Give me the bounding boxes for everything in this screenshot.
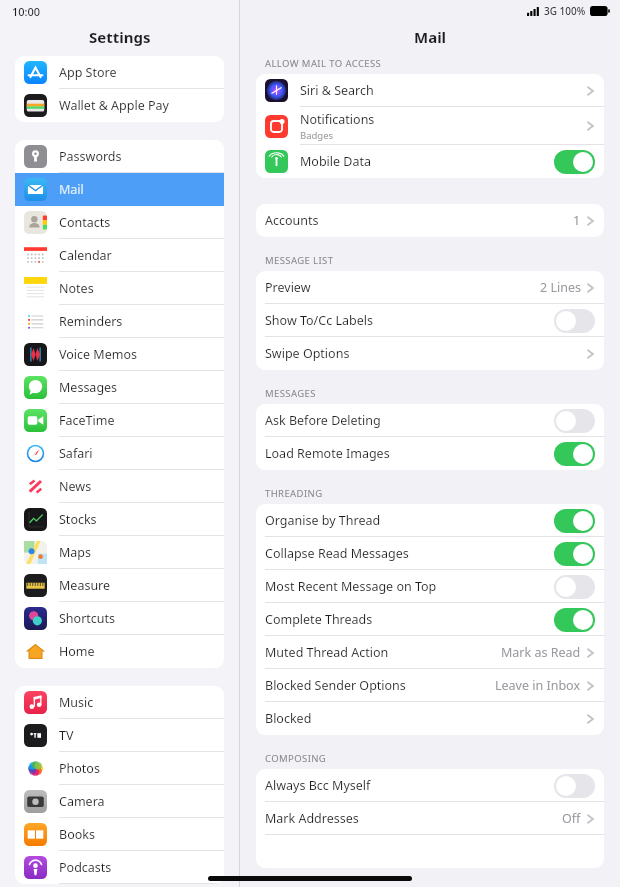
staticText: Swipe Options	[265, 345, 350, 362]
staticText: Voice Memos	[59, 346, 137, 363]
button[interactable]: Off	[554, 309, 595, 333]
button[interactable]: Reminders	[15, 305, 224, 338]
staticText: Blocked	[265, 710, 312, 727]
staticText: Podcasts	[59, 859, 112, 876]
button[interactable]: Voice Memos	[15, 338, 224, 371]
button[interactable]: Off	[554, 409, 595, 433]
button[interactable]: On	[554, 542, 595, 566]
button[interactable]: Podcasts	[15, 851, 224, 884]
staticText: Reminders	[59, 313, 123, 330]
button[interactable]: Off	[554, 774, 595, 798]
staticText: Calendar	[59, 247, 112, 264]
staticText: Preview	[265, 279, 311, 296]
staticText: Show To/Cc Labels	[265, 312, 373, 329]
button[interactable]: TV	[15, 719, 224, 752]
staticText: Shortcuts	[59, 610, 116, 627]
button[interactable]: Swipe Options	[256, 337, 604, 370]
button[interactable]: Blocked	[256, 702, 604, 735]
button[interactable]: News	[15, 470, 224, 503]
staticText: MESSAGES	[265, 387, 316, 400]
staticText: Stocks	[59, 511, 97, 528]
staticText: 2 Lines	[540, 279, 581, 296]
button[interactable]: Preview	[256, 271, 604, 304]
staticText: THREADING	[265, 487, 323, 500]
button[interactable]: Messages	[15, 371, 224, 404]
button[interactable]: FaceTime	[15, 404, 224, 437]
button[interactable]: Notifications	[256, 107, 604, 145]
button[interactable]: Safari	[15, 437, 224, 470]
button[interactable]: Home	[15, 635, 224, 668]
staticText: TV	[59, 727, 74, 744]
button[interactable]: App Store	[15, 56, 224, 89]
staticText: Wallet & Apple Pay	[59, 97, 169, 114]
staticText: Contacts	[59, 214, 111, 231]
button[interactable]: Mobile Data	[256, 145, 604, 178]
staticText: Camera	[59, 793, 105, 810]
staticText: Photos	[59, 760, 100, 777]
staticText: Blocked Sender Options	[265, 677, 406, 694]
button[interactable]: Maps	[15, 536, 224, 569]
button[interactable]: Collapse Read Messages	[256, 537, 604, 570]
button[interactable]: Mark Addresses	[256, 802, 604, 835]
button[interactable]: On	[554, 150, 595, 174]
staticText: App Store	[59, 64, 117, 81]
staticText: Organise by Thread	[265, 512, 381, 529]
staticText: Muted Thread Action	[265, 644, 389, 661]
button[interactable]: Show To/Cc Labels	[256, 304, 604, 337]
staticText: Complete Threads	[265, 611, 373, 628]
staticText: 10:00	[12, 4, 41, 19]
staticText: Home	[59, 643, 95, 660]
button[interactable]: Measure	[15, 569, 224, 602]
button[interactable]: Most Recent Message on Top	[256, 570, 604, 603]
staticText: Load Remote Images	[265, 445, 390, 462]
button[interactable]: Stocks	[15, 503, 224, 536]
staticText: Mail	[414, 27, 447, 47]
button[interactable]: Wallet & Apple Pay	[15, 89, 224, 122]
staticText: News	[59, 478, 92, 495]
staticText: Safari	[59, 445, 93, 462]
staticText: Mobile Data	[300, 153, 372, 170]
staticText: Accounts	[265, 212, 319, 229]
button[interactable]: Contacts	[15, 206, 224, 239]
staticText: Books	[59, 826, 95, 843]
button[interactable]: Siri & Search	[256, 74, 604, 107]
button[interactable]: Shortcuts	[15, 602, 224, 635]
button[interactable]: Off	[554, 575, 595, 599]
staticText: Settings	[89, 27, 151, 47]
button[interactable]: Notes	[15, 272, 224, 305]
staticText: Messages	[59, 379, 118, 396]
button[interactable]: Music	[15, 686, 224, 719]
staticText: Off	[562, 810, 581, 827]
staticText: Measure	[59, 577, 111, 594]
staticText: Mark Addresses	[265, 810, 359, 827]
staticText: Badges	[300, 129, 334, 142]
button[interactable]: Books	[15, 818, 224, 851]
button[interactable]: Mail	[15, 173, 224, 206]
button[interactable]: On	[554, 442, 595, 466]
staticText: Mail	[59, 181, 84, 198]
staticText: Ask Before Deleting	[265, 412, 381, 429]
staticText: Siri & Search	[300, 82, 374, 99]
button[interactable]: Camera	[15, 785, 224, 818]
button[interactable]: Load Remote Images	[256, 437, 604, 470]
button[interactable]: Accounts	[256, 204, 604, 237]
staticText: Collapse Read Messages	[265, 545, 409, 562]
button[interactable]: On	[554, 509, 595, 533]
button[interactable]: Always Bcc Myself	[256, 769, 604, 802]
button[interactable]: Passwords	[15, 140, 224, 173]
staticText: Mark as Read	[501, 644, 581, 661]
button[interactable]: On	[554, 608, 595, 632]
button[interactable]: Photos	[15, 752, 224, 785]
staticText: MESSAGE LIST	[265, 254, 334, 267]
button[interactable]: Blocked Sender Options	[256, 669, 604, 702]
staticText: 3G 100%	[544, 4, 586, 18]
button[interactable]: Calendar	[15, 239, 224, 272]
staticText: Leave in Inbox	[495, 677, 581, 694]
button[interactable]: Organise by Thread	[256, 504, 604, 537]
button[interactable]: Muted Thread Action	[256, 636, 604, 669]
button[interactable]: Ask Before Deleting	[256, 404, 604, 437]
staticText: Music	[59, 694, 94, 711]
button[interactable]: Complete Threads	[256, 603, 604, 636]
staticText: FaceTime	[59, 412, 115, 429]
